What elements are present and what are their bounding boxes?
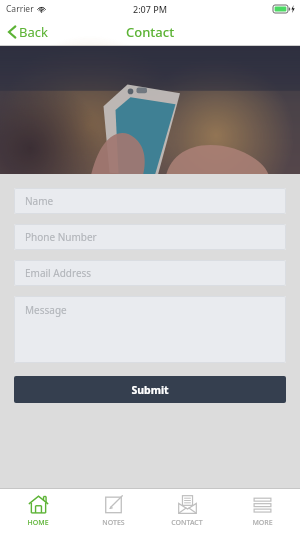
staticText: Submit [131,383,169,397]
button[interactable]: Contact [150,489,224,533]
button[interactable]: Home [1,489,75,533]
staticText: Contact [126,23,175,41]
staticText: Phone Number [25,230,97,244]
button[interactable]: Notes [76,489,150,533]
button[interactable]: Email Address [14,260,286,286]
staticText: 2:07 PM [133,3,167,15]
other: Home [28,494,49,515]
staticText: Message [25,303,67,317]
staticText: NOTES [102,518,125,528]
button[interactable]: More [225,489,299,533]
staticText: Email Address [25,266,92,280]
other: More [252,494,273,515]
staticText: MORE [252,518,273,528]
staticText: Back [19,23,48,41]
staticText: HOME [27,518,49,528]
button[interactable]: Phone Number [14,224,286,250]
staticText: Carrier [6,3,34,15]
staticText: Name [25,194,54,208]
button[interactable]: Submit [14,376,286,403]
other: Contact [177,494,198,515]
button[interactable]: Back [0,19,58,45]
other: Notes [103,494,124,515]
staticText: CONTACT [171,518,203,528]
button[interactable]: Message [14,296,286,363]
button[interactable]: Name [14,188,286,214]
